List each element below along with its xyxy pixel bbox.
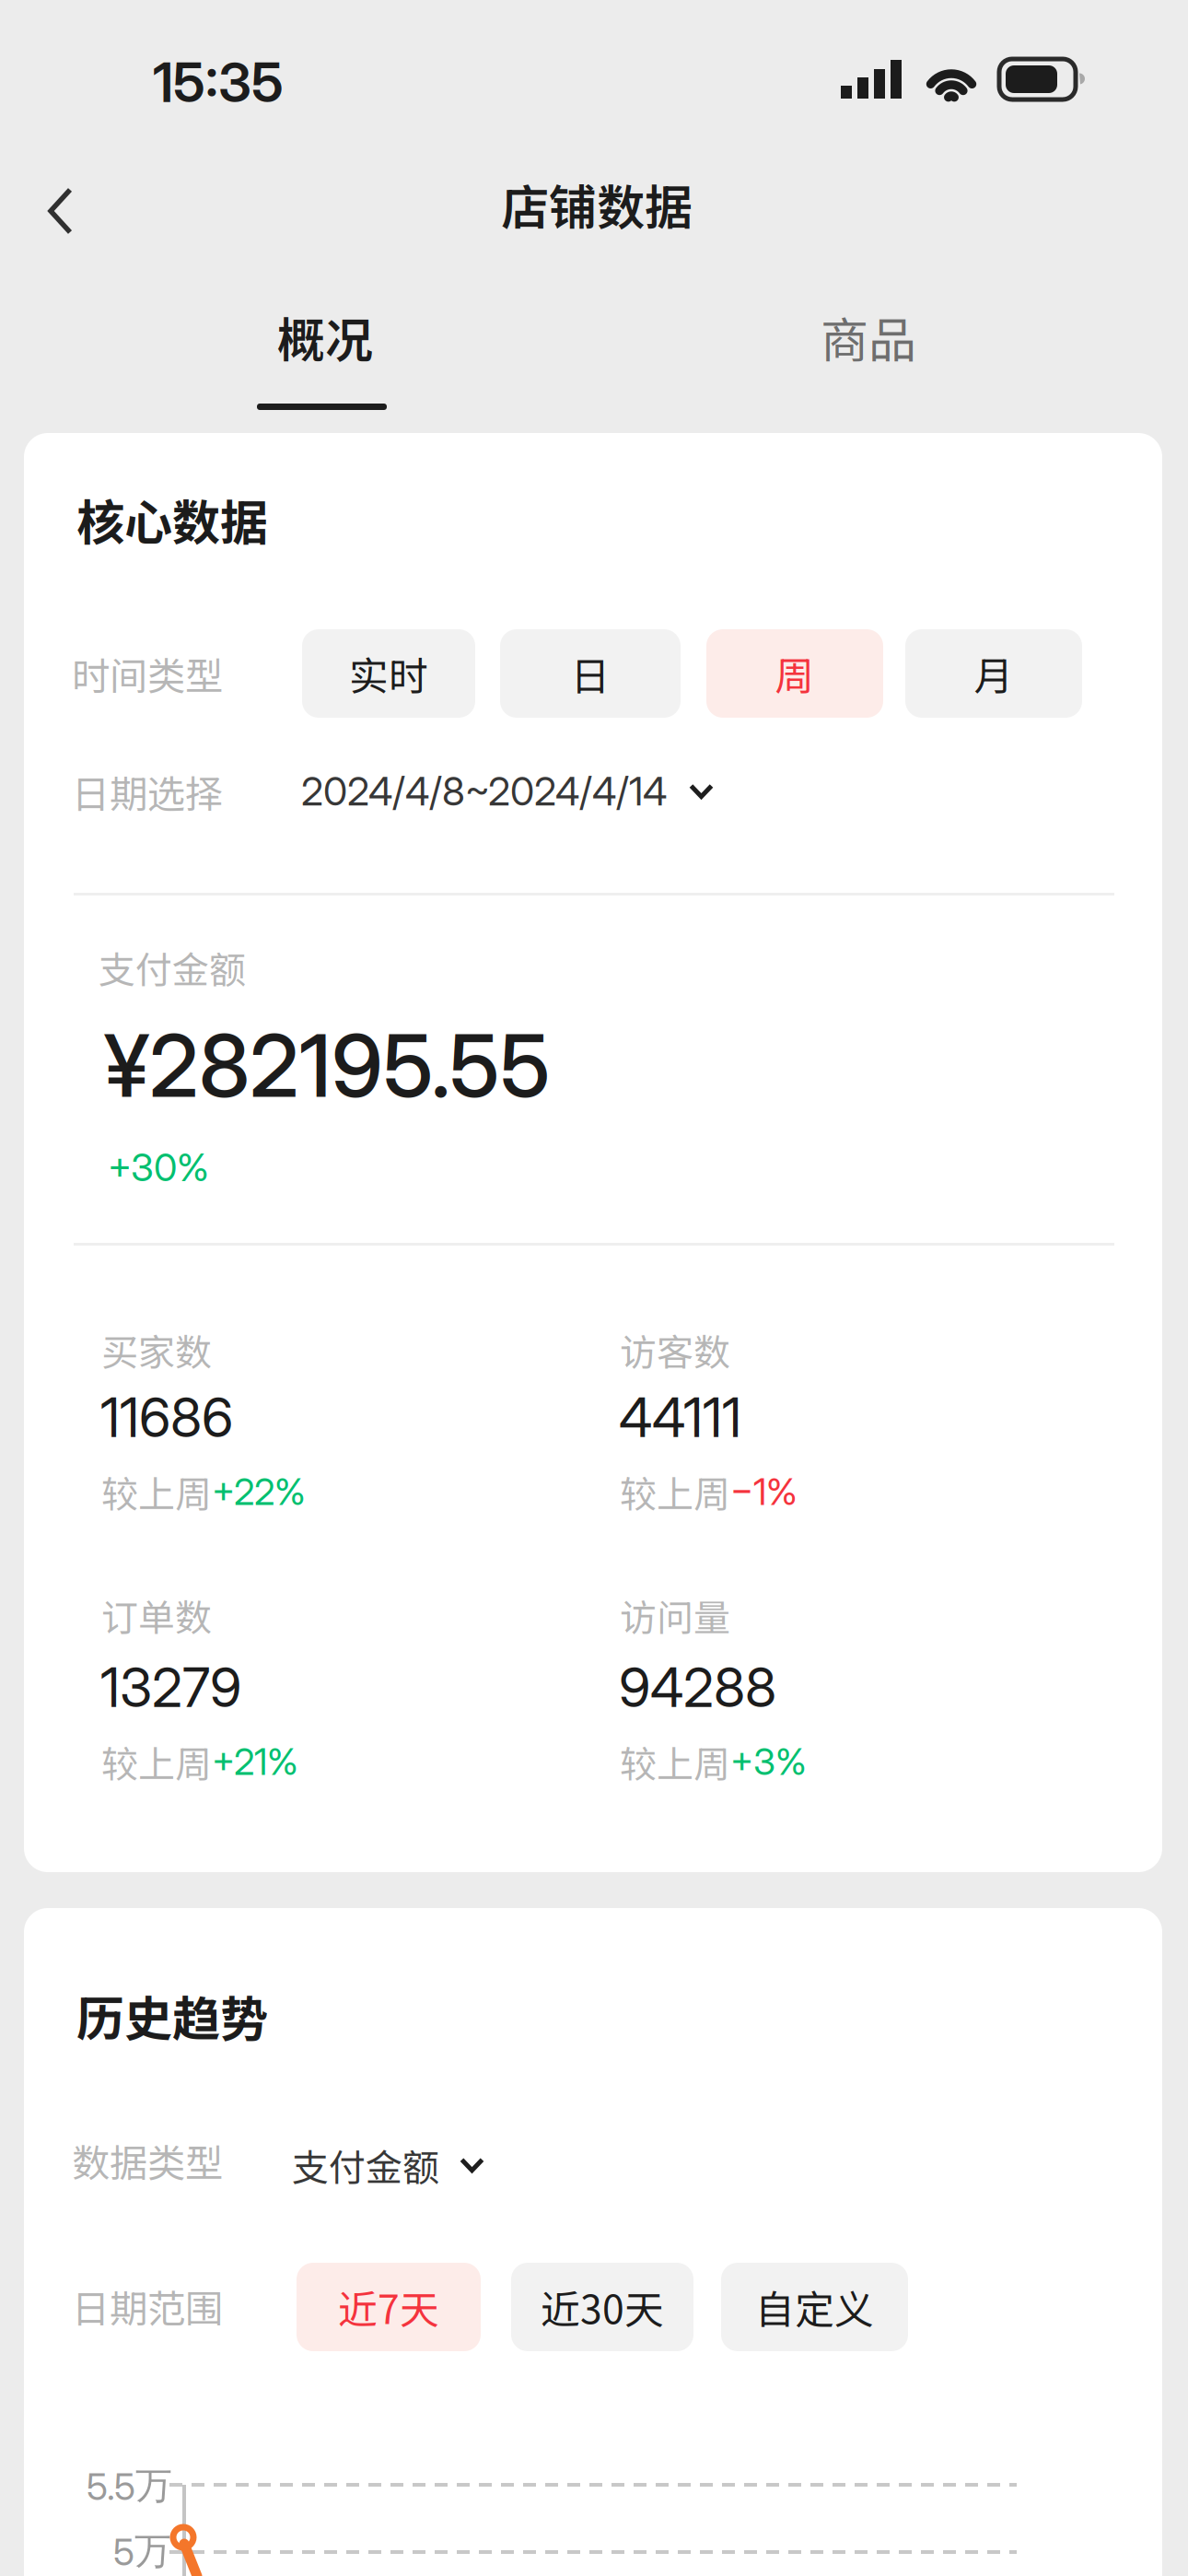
staticText: ¥282195.55 [104,1013,551,1117]
button[interactable]: 近30天 [511,2263,693,2351]
staticText: 核心数据 [76,485,268,554]
staticText: 11686 [100,1385,233,1450]
staticText: 数据类型 [72,2133,223,2188]
staticText: 日期选择 [72,764,223,819]
button[interactable]: 近7天 [297,2263,481,2351]
staticText: 日 [571,645,610,702]
button[interactable]: 商品 [747,292,986,426]
staticText: 较上周 [620,1465,730,1518]
button[interactable]: 支付金额 [292,2125,484,2205]
staticText: 访客数 [620,1323,730,1376]
button[interactable]: 月 [905,629,1082,718]
staticText: +30% [108,1144,209,1190]
staticText: 月 [974,645,1013,702]
staticText: 商品 [821,302,916,372]
staticText: 概况 [277,302,373,372]
staticText: 实时 [349,645,428,702]
staticText: 自定义 [755,2279,874,2335]
button[interactable]: 周 [706,629,883,718]
staticText: 访问量 [620,1588,730,1642]
staticText: +3% [730,1739,807,1784]
staticText: 支付金额 [99,941,246,994]
staticText: 支付金额 [292,2138,439,2192]
staticText: +21% [212,1739,298,1784]
staticText: 5.5万 [87,2463,172,2509]
staticText: 5万 [113,2528,171,2575]
staticText: 近7天 [338,2279,439,2335]
staticText: 历史趋势 [76,1981,268,2050]
staticText: 13279 [100,1655,241,1720]
staticText: 94288 [619,1655,776,1720]
button[interactable]: 自定义 [721,2263,908,2351]
staticText: 2024/4/8~2024/4/14 [301,767,667,815]
button[interactable]: 概况 [203,292,442,426]
staticText: 订单数 [101,1588,212,1642]
button[interactable]: 日 [500,629,681,718]
staticText: 近30天 [541,2279,664,2335]
button[interactable]: 实时 [302,629,475,718]
staticText: 较上周 [101,1735,212,1788]
staticText: 15:35 [153,50,284,115]
staticText: 周 [775,645,815,702]
button[interactable]: 返回 [0,162,111,260]
staticText: +22% [212,1469,306,1514]
button[interactable]: 2024/4/8~2024/4/14 [301,755,714,828]
staticText: 店铺数据 [501,170,693,239]
staticText: 较上周 [101,1465,212,1518]
staticText: −1% [730,1469,798,1514]
staticText: 44111 [619,1385,741,1450]
staticText: 买家数 [101,1323,212,1376]
staticText: 日期范围 [72,2278,223,2334]
staticText: 时间类型 [72,646,223,701]
staticText: 较上周 [620,1735,730,1788]
